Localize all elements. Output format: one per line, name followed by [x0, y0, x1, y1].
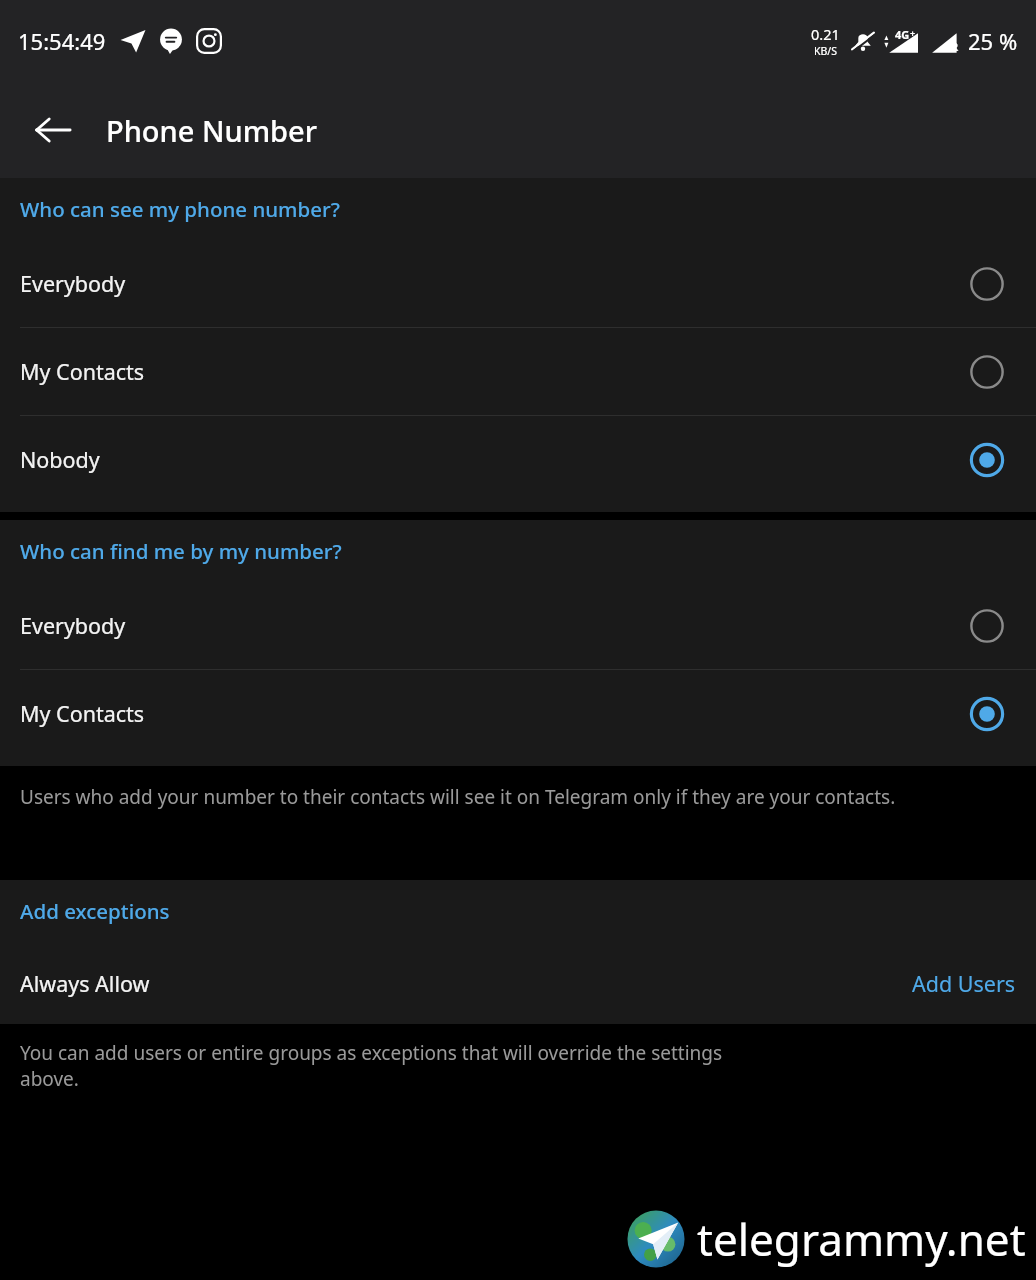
- button[interactable]: Nobody: [0, 416, 1036, 503]
- staticText: 4G: [895, 27, 910, 42]
- button[interactable]: My Contacts: [0, 328, 1036, 415]
- staticText: My Contacts: [20, 357, 145, 386]
- staticText: 25 %: [968, 26, 1018, 56]
- staticText: Everybody: [20, 269, 126, 298]
- staticText: Everybody: [20, 611, 126, 640]
- staticText: You can add users or entire groups as ex…: [20, 1040, 723, 1066]
- staticText: Who can see my phone number?: [20, 195, 340, 223]
- button[interactable]: Everybody: [0, 240, 1036, 327]
- staticText: KB/S: [814, 44, 837, 58]
- staticText: 0.21: [811, 24, 840, 44]
- staticText: Add exceptions: [20, 897, 170, 925]
- staticText: telegrammy.net: [697, 1209, 1026, 1269]
- staticText: Phone Number: [106, 111, 318, 150]
- button[interactable]: My Contacts: [0, 670, 1036, 757]
- button[interactable]: Back: [22, 99, 84, 161]
- staticText: R: [951, 39, 959, 54]
- staticText: 15:54:49: [18, 26, 106, 56]
- staticText: Always Allow: [20, 969, 150, 998]
- staticText: above.: [20, 1066, 79, 1092]
- staticText: Add Users: [912, 969, 1016, 998]
- staticText: Nobody: [20, 445, 100, 474]
- button[interactable]: Always Allow: [0, 942, 1036, 1024]
- staticText: +: [910, 27, 916, 39]
- staticText: Who can find me by my number?: [20, 537, 342, 565]
- staticText: Users who add your number to their conta…: [20, 784, 896, 810]
- staticText: My Contacts: [20, 699, 145, 728]
- button[interactable]: Everybody: [0, 582, 1036, 669]
